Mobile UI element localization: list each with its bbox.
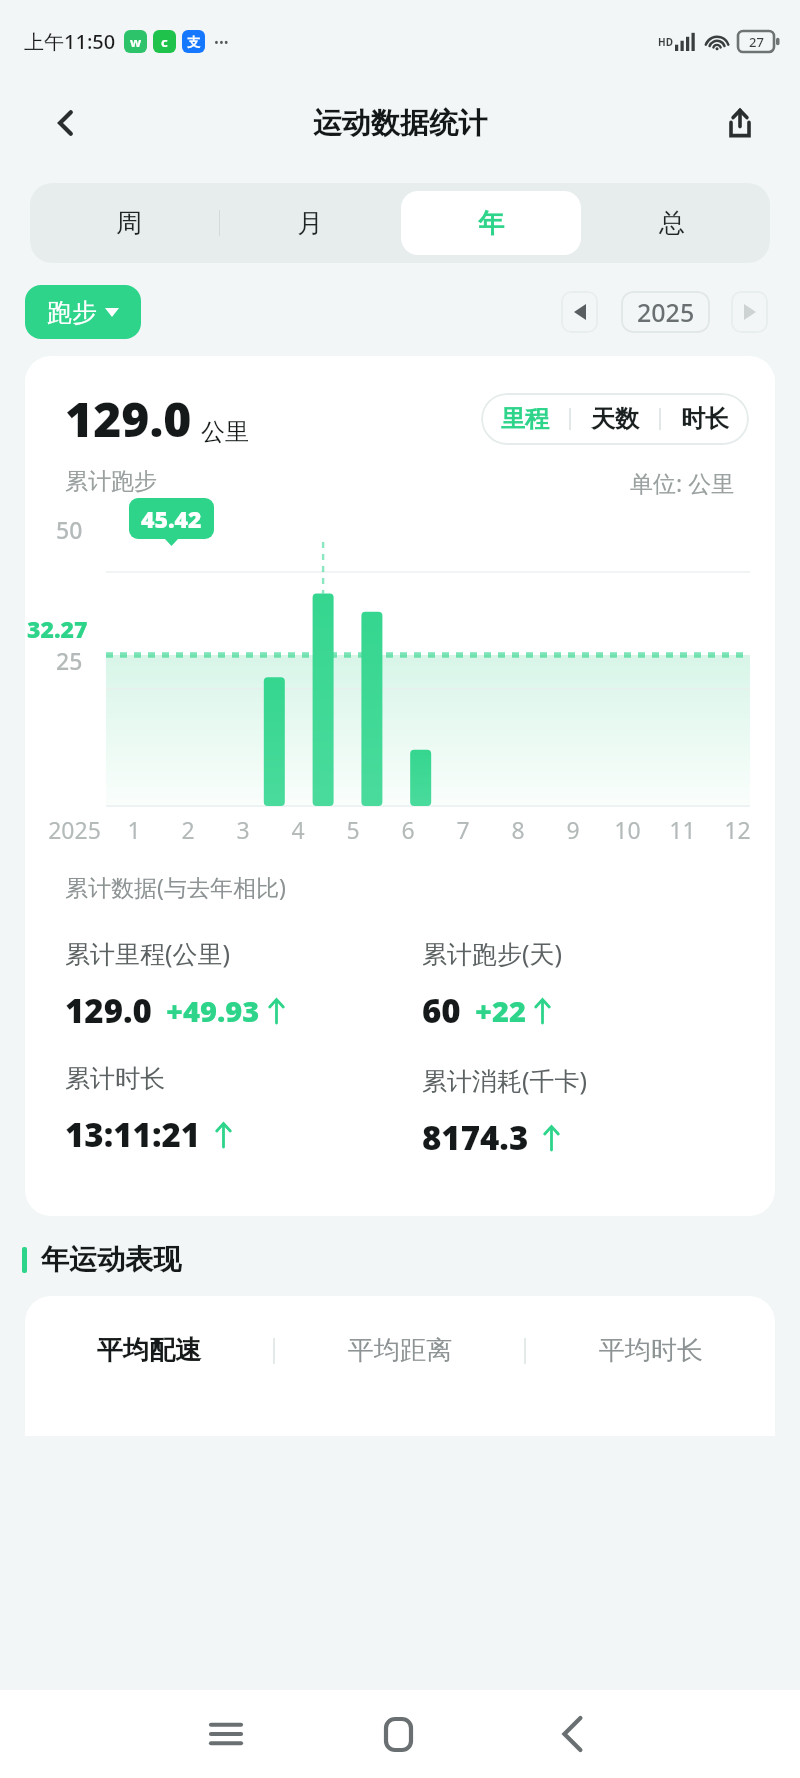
- button[interactable]: Recents: [200, 1708, 252, 1760]
- button[interactable]: 月: [220, 191, 400, 255]
- staticText: 8174.3: [422, 1115, 529, 1160]
- staticText: •••: [214, 33, 229, 51]
- staticText: 累计时长: [65, 1063, 165, 1094]
- staticText: 8: [511, 814, 525, 845]
- staticText: 周: [116, 207, 142, 240]
- button[interactable]: 平均配速: [25, 1334, 273, 1367]
- button[interactable]: Previous year: [561, 291, 598, 333]
- staticText: 25: [56, 645, 83, 676]
- staticText: 平均时长: [599, 1334, 703, 1367]
- button[interactable]: 跑步: [25, 285, 141, 339]
- button[interactable]: 2025: [621, 291, 710, 333]
- staticText: HD: [658, 35, 673, 49]
- staticText: 12: [724, 814, 751, 845]
- staticText: 里程: [501, 404, 549, 434]
- staticText: +49.93: [166, 991, 260, 1030]
- button[interactable]: 天数: [571, 393, 659, 445]
- staticText: 10: [614, 814, 641, 845]
- staticText: 2025: [48, 814, 101, 845]
- staticText: 公里: [201, 417, 249, 447]
- staticText: 3: [236, 814, 250, 845]
- staticText: 跑步: [47, 297, 97, 328]
- staticText: 平均距离: [348, 1334, 452, 1367]
- staticText: 月: [297, 207, 323, 240]
- staticText: 天数: [591, 404, 639, 434]
- staticText: 7: [456, 814, 470, 845]
- button[interactable]: 时长: [661, 393, 749, 445]
- button[interactable]: 平均时长: [526, 1334, 775, 1367]
- button[interactable]: 周: [38, 191, 219, 255]
- staticText: 6: [401, 814, 415, 845]
- staticText: 11: [669, 814, 696, 845]
- staticText: w: [130, 33, 142, 51]
- staticText: 支: [187, 34, 200, 50]
- staticText: 总: [659, 207, 685, 240]
- staticText: 32.27: [27, 613, 88, 644]
- button[interactable]: Next year: [731, 291, 768, 333]
- button[interactable]: 总: [582, 191, 762, 255]
- staticText: 累计里程(公里): [65, 936, 231, 970]
- button[interactable]: Back: [44, 101, 88, 145]
- staticText: 累计跑步: [65, 467, 157, 496]
- staticText: 年运动表现: [41, 1242, 181, 1277]
- button[interactable]: 平均距离: [275, 1334, 524, 1367]
- staticText: 年: [478, 207, 504, 240]
- staticText: 时长: [681, 404, 729, 434]
- button[interactable]: Home: [372, 1708, 424, 1760]
- staticText: 129.0: [65, 386, 192, 451]
- staticText: 单位: 公里: [630, 467, 735, 498]
- staticText: 运动数据统计: [313, 105, 487, 142]
- button[interactable]: 年: [401, 191, 581, 255]
- staticText: 60: [422, 988, 461, 1033]
- staticText: 129.0: [65, 988, 152, 1033]
- staticText: +22: [475, 991, 526, 1030]
- staticText: 2: [181, 814, 195, 845]
- button[interactable]: Share: [718, 101, 762, 145]
- staticText: 2025: [637, 295, 695, 329]
- staticText: 5: [346, 814, 360, 845]
- staticText: 上午11:50: [24, 28, 116, 55]
- staticText: 9: [566, 814, 580, 845]
- button[interactable]: Back: [546, 1708, 598, 1760]
- staticText: 1: [127, 814, 141, 845]
- button[interactable]: 里程: [481, 393, 569, 445]
- staticText: 13:11:21: [65, 1112, 201, 1157]
- staticText: 45.42: [141, 503, 202, 534]
- staticText: 27: [749, 33, 764, 51]
- staticText: 累计消耗(千卡): [422, 1063, 588, 1097]
- staticText: c: [161, 33, 168, 51]
- staticText: 4: [291, 814, 305, 845]
- staticText: 50: [56, 514, 83, 545]
- staticText: 平均配速: [97, 1334, 201, 1367]
- staticText: 累计数据(与去年相比): [65, 871, 286, 902]
- staticText: 累计跑步(天): [422, 936, 563, 970]
